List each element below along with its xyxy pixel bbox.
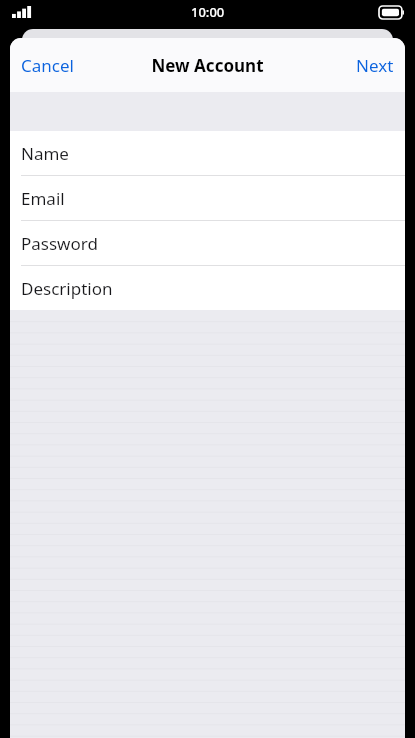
button[interactable]: Cancel bbox=[10, 46, 86, 85]
staticText: Description bbox=[21, 277, 113, 300]
staticText: New Account bbox=[151, 54, 264, 77]
button[interactable]: Email bbox=[10, 176, 405, 220]
button[interactable]: Name bbox=[10, 131, 405, 175]
button[interactable]: Next bbox=[344, 46, 405, 85]
staticText: Password bbox=[21, 232, 98, 255]
staticText: Name bbox=[21, 142, 69, 165]
staticText: Next bbox=[356, 54, 394, 77]
button[interactable]: Password bbox=[10, 221, 405, 265]
staticText: 10:00 bbox=[191, 3, 225, 21]
button[interactable]: Description bbox=[10, 266, 405, 310]
staticText: Email bbox=[21, 187, 65, 210]
staticText: Cancel bbox=[21, 54, 74, 77]
